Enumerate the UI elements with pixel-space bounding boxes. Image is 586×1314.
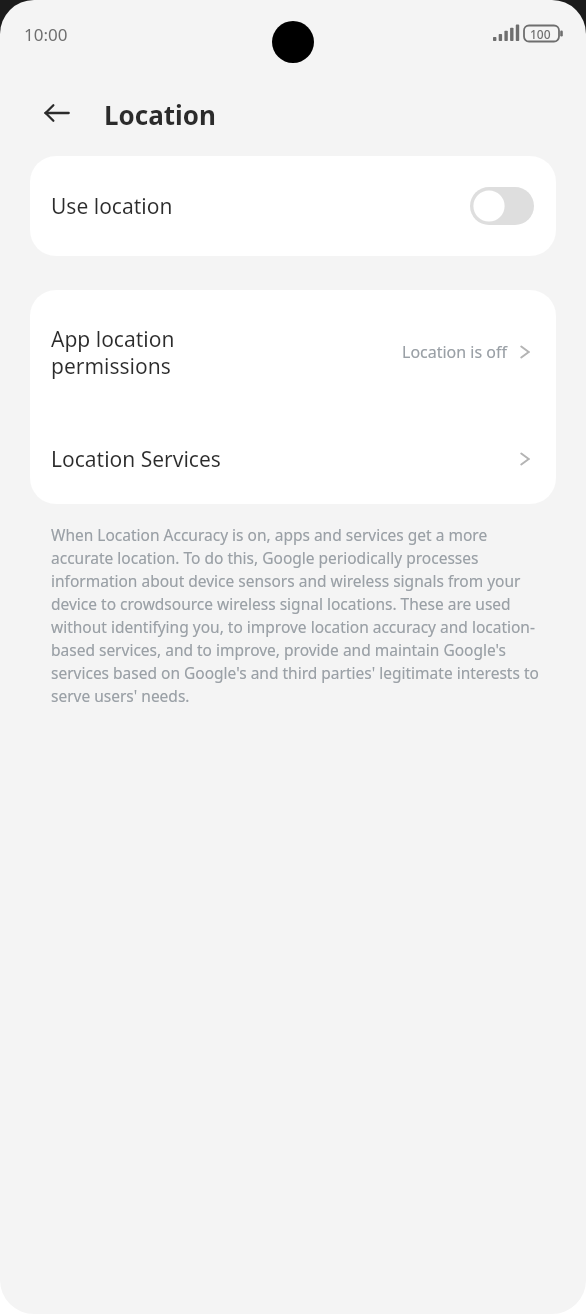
button[interactable]: Location Services xyxy=(30,414,556,504)
staticText: Use location xyxy=(51,192,470,221)
staticText: App location permissions xyxy=(51,325,402,380)
button[interactable]: Use location xyxy=(30,156,556,256)
staticText: 10:00 xyxy=(24,23,68,46)
staticText: When Location Accuracy is on, apps and s… xyxy=(51,524,553,707)
button[interactable]: Back xyxy=(33,89,81,137)
staticText: Location is off xyxy=(402,341,507,363)
staticText: Location xyxy=(104,97,216,132)
staticText: Location Services xyxy=(51,445,514,474)
button[interactable]: App location permissions xyxy=(30,290,556,414)
staticText: 100 xyxy=(530,26,551,42)
